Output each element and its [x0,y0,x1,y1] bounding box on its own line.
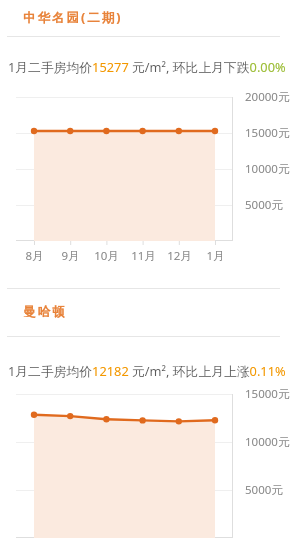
staticText: 1月二手房均价15277 元/m², 环比上月下跌0.00% [8,58,286,75]
staticText: 10月 [94,248,119,264]
staticText: 15000元 [245,125,290,141]
staticText: 1月二手房均价12182 元/m², 环比上月上涨0.11% [8,362,286,379]
staticText: 11月 [131,248,156,264]
staticText: 20000元 [245,89,290,105]
staticText: 12月 [167,248,192,264]
staticText: 1月 [206,248,225,264]
staticText: 曼哈顿 [23,304,67,320]
staticText: 8月 [25,248,44,264]
staticText: 5000元 [245,482,283,498]
staticText: 10000元 [245,161,290,177]
button[interactable]: 中华名园(二期) [0,5,290,29]
staticText: 10000元 [245,434,290,450]
staticText: 中华名园(二期) [23,9,123,26]
button[interactable]: 曼哈顿 [0,300,290,324]
staticText: 9月 [61,248,80,264]
staticText: 5000元 [245,197,283,213]
staticText: 15000元 [245,386,290,402]
